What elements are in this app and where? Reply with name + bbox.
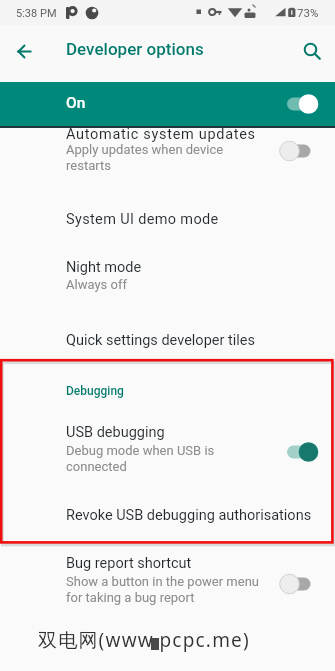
button[interactable]: On — [0, 82, 335, 126]
button[interactable]: Bug report shortcut — [0, 546, 335, 618]
button[interactable]: Automatic system updates — [0, 128, 335, 184]
staticText: Automatic system updates — [66, 126, 256, 143]
staticText: USB debugging — [66, 424, 165, 441]
staticText: Revoke USB debugging authorisations — [66, 507, 312, 524]
staticText: Apply updates when device restarts — [66, 142, 224, 173]
staticText: System UI demo mode — [66, 211, 219, 228]
button[interactable]: USB debugging — [0, 410, 335, 486]
staticText: 5:38 PM — [16, 7, 57, 20]
staticText: Always off — [66, 277, 127, 292]
staticText: Debug mode when USB is connected — [66, 443, 215, 474]
staticText: Bug report shortcut — [66, 555, 192, 572]
button[interactable] — [294, 32, 330, 68]
staticText: Night mode — [66, 259, 142, 276]
button[interactable]: System UI demo mode — [0, 196, 335, 246]
button[interactable]: Quick settings developer tiles — [0, 318, 335, 364]
staticText: Show a button in the power menu for taki… — [66, 574, 259, 605]
staticText: On — [66, 94, 86, 112]
staticText: 73% — [297, 6, 319, 19]
button[interactable]: Night mode — [0, 246, 335, 310]
staticText: Quick settings developer tiles — [66, 332, 255, 349]
staticText: Debugging — [66, 384, 124, 398]
button[interactable]: Revoke USB debugging authorisations — [0, 492, 335, 542]
button[interactable] — [6, 34, 42, 70]
staticText: Developer options — [66, 39, 204, 59]
staticText: 双电网(www.pcpc.me) — [38, 627, 250, 653]
